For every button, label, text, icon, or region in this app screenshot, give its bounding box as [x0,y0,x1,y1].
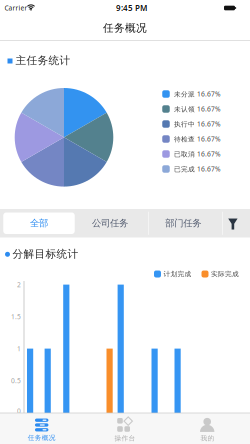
staticText: 1.5 [11,312,21,321]
staticText: 主任务统计 [15,54,70,67]
staticText: 未分派 16.67% [174,90,221,98]
staticText: 操作台 [114,434,135,442]
staticText: 0.5 [11,376,21,385]
staticText: 计划完成 [163,270,191,278]
staticText: 已取消 16.67% [174,150,221,158]
staticText: 0 [17,407,21,415]
staticText: 全部 [30,217,48,229]
staticText: 实际完成 [211,270,239,278]
button[interactable]: 部门任务 [147,209,220,237]
staticText: 9:45 PM [116,3,147,13]
staticText: 待检查 16.67% [174,135,221,143]
staticText: 部门任务 [165,217,201,229]
staticText: 分解目标统计 [12,247,78,260]
staticText: 公司任务 [92,217,128,229]
staticText: 我的 [200,434,214,442]
button[interactable]: 操作台 [83,416,166,442]
staticText: Carrier [4,4,27,12]
staticText: 未认领 16.67% [174,105,221,113]
staticText: 2 [17,280,21,289]
button[interactable]: 我的 [166,417,249,443]
staticText: 任务概况 [103,21,147,34]
staticText: 执行中 16.67% [174,120,221,128]
staticText: 已完成 16.67% [174,165,221,173]
button[interactable]: 任务概况 [0,417,83,443]
staticText: 1 [17,344,21,353]
staticText: 任务概况 [28,434,56,442]
button[interactable]: 公司任务 [73,209,146,237]
button[interactable]: 全部 [3,212,75,234]
button[interactable]: 筛选 [222,209,250,237]
